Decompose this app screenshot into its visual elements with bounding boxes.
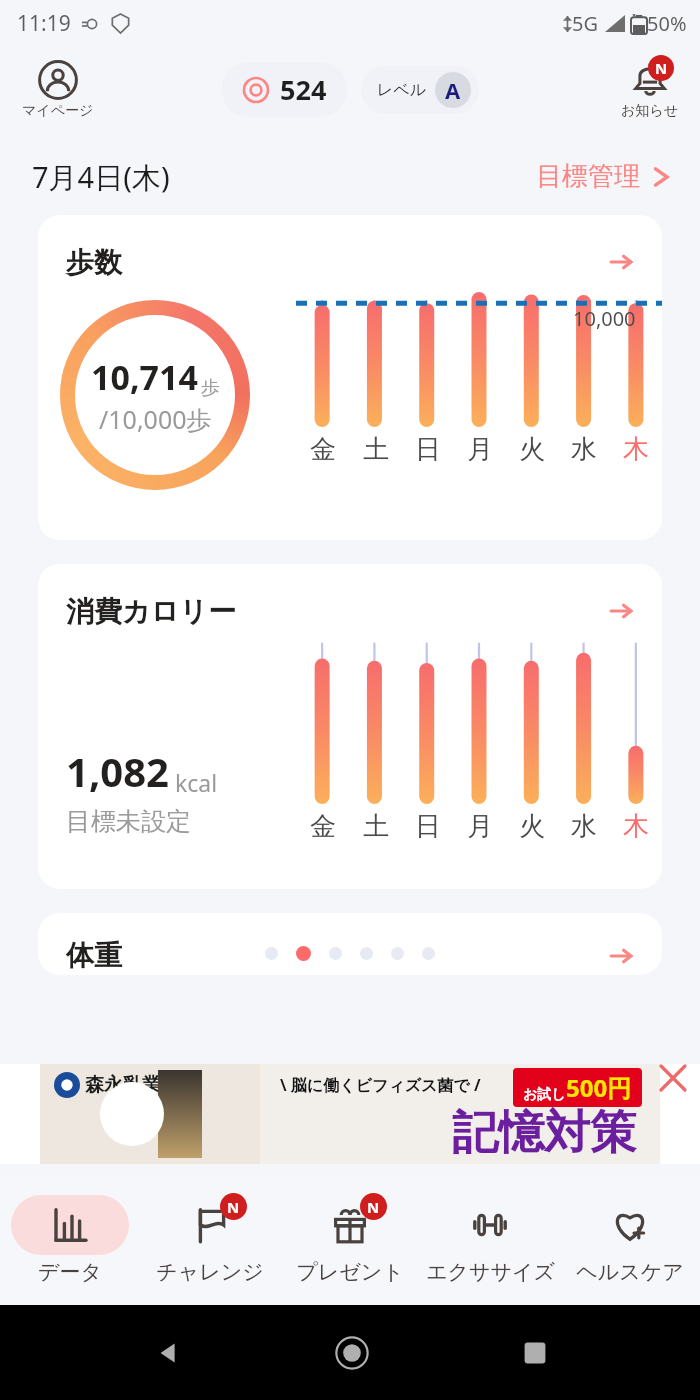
button[interactable]: エクササイズ bbox=[420, 1175, 560, 1305]
button[interactable]: レベル bbox=[361, 66, 479, 114]
staticText: 記憶対策 bbox=[452, 1104, 636, 1162]
staticText: /10,000歩 bbox=[99, 402, 212, 436]
button[interactable]: ヘルスケア bbox=[560, 1175, 700, 1305]
staticText: 日 bbox=[415, 433, 441, 466]
staticText: お試し bbox=[523, 1086, 566, 1104]
staticText: 5G bbox=[572, 10, 598, 37]
staticText: N bbox=[655, 58, 668, 78]
staticText: A bbox=[445, 75, 461, 105]
staticText: 体重 bbox=[66, 938, 122, 973]
staticText: エクササイズ bbox=[426, 1259, 555, 1285]
staticText: 森永乳業 bbox=[85, 1073, 161, 1097]
staticText: 524 bbox=[280, 71, 327, 108]
staticText: 土 bbox=[363, 433, 389, 466]
staticText: 7月4日(木) bbox=[32, 157, 170, 197]
staticText: 10,000 bbox=[573, 305, 636, 332]
staticText: 月 bbox=[467, 810, 493, 843]
staticText: 水 bbox=[571, 433, 597, 466]
button[interactable]: 歩数の詳細 bbox=[602, 243, 640, 281]
staticText: マイページ bbox=[22, 102, 94, 120]
staticText: 木 bbox=[623, 810, 649, 843]
staticText: 水 bbox=[571, 810, 597, 843]
staticText: ヘルスケア bbox=[576, 1259, 684, 1285]
button[interactable]: N bbox=[280, 1175, 420, 1305]
staticText: お知らせ bbox=[621, 102, 678, 120]
button[interactable]: マイページ bbox=[18, 58, 98, 122]
staticText: \ 脳に働くビフィズス菌で / bbox=[280, 1074, 481, 1096]
button[interactable]: お知らせ bbox=[617, 57, 682, 122]
staticText: チャレンジ bbox=[156, 1259, 264, 1285]
staticText: N bbox=[227, 1197, 240, 1217]
staticText: データ bbox=[38, 1259, 102, 1285]
staticText: 10,714 bbox=[91, 354, 198, 400]
button[interactable]: 消費カロリーの詳細 bbox=[602, 592, 640, 630]
staticText: 歩数 bbox=[66, 245, 122, 280]
staticText: レベル bbox=[377, 80, 427, 100]
button[interactable]: 目標管理 bbox=[532, 156, 676, 197]
staticText: 1,082 bbox=[66, 744, 169, 798]
button[interactable]: データ bbox=[0, 1175, 140, 1305]
staticText: 金 bbox=[310, 810, 336, 843]
staticText: 日 bbox=[415, 810, 441, 843]
staticText: 11:19 bbox=[17, 9, 71, 38]
staticText: プレゼント bbox=[296, 1259, 404, 1285]
staticText: 目標管理 bbox=[536, 160, 640, 193]
staticText: 月 bbox=[467, 433, 493, 466]
staticText: 火 bbox=[519, 433, 545, 466]
staticText: 50% bbox=[647, 10, 687, 37]
button[interactable]: 消費カロリー bbox=[38, 564, 662, 889]
staticText: 土 bbox=[363, 810, 389, 843]
staticText: 金 bbox=[310, 433, 336, 466]
staticText: 消費カロリー bbox=[66, 594, 236, 629]
staticText: 500円 bbox=[566, 1071, 632, 1104]
staticText: 木 bbox=[623, 433, 649, 466]
button[interactable]: 歩数 bbox=[38, 215, 662, 540]
staticText: 火 bbox=[519, 810, 545, 843]
staticText: kcal bbox=[175, 767, 218, 798]
staticText: N bbox=[367, 1197, 380, 1217]
staticText: 歩 bbox=[201, 376, 220, 400]
button[interactable]: N bbox=[140, 1175, 280, 1305]
button[interactable]: 広告を閉じる bbox=[654, 1059, 692, 1097]
staticText: 目標未設定 bbox=[66, 806, 191, 837]
button[interactable]: 森永乳業 bbox=[40, 1064, 660, 1164]
button[interactable]: 体重 bbox=[38, 913, 662, 975]
button[interactable]: 524 bbox=[222, 62, 347, 117]
